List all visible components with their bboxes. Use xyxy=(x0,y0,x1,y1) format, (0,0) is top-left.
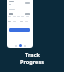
staticText: Track xyxy=(25,51,40,58)
button[interactable] xyxy=(9,28,30,32)
staticText: Progress xyxy=(20,58,44,65)
